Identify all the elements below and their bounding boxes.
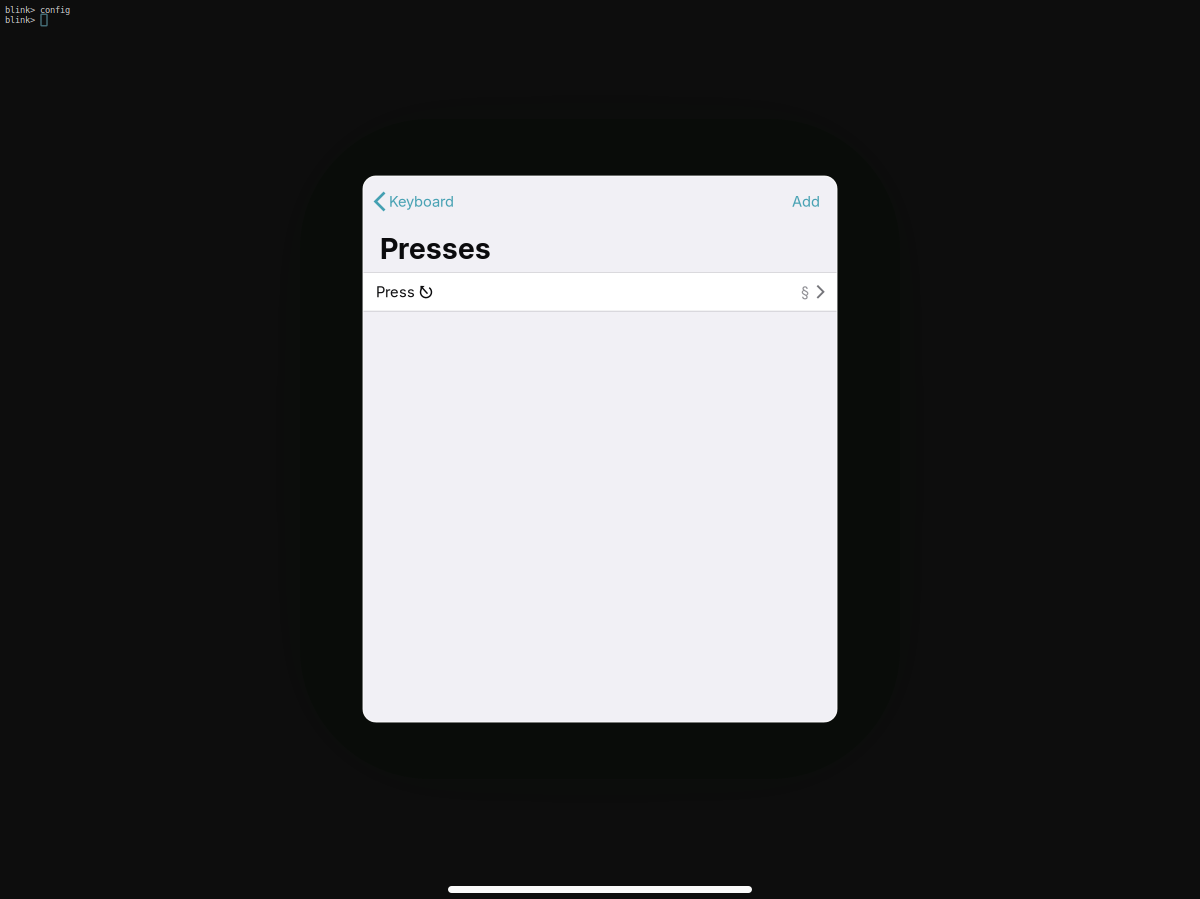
staticText: blink> <box>5 15 35 25</box>
button[interactable]: Add <box>783 185 829 216</box>
staticText: Keyboard <box>389 193 454 210</box>
button[interactable]: Keyboard <box>371 183 457 218</box>
staticText: Presses <box>380 231 491 266</box>
staticText: blink> config <box>5 5 70 15</box>
staticText: Add <box>792 193 820 210</box>
button[interactable]: Press <box>363 273 837 311</box>
staticText: § <box>801 283 809 301</box>
staticText: Press <box>376 283 415 301</box>
